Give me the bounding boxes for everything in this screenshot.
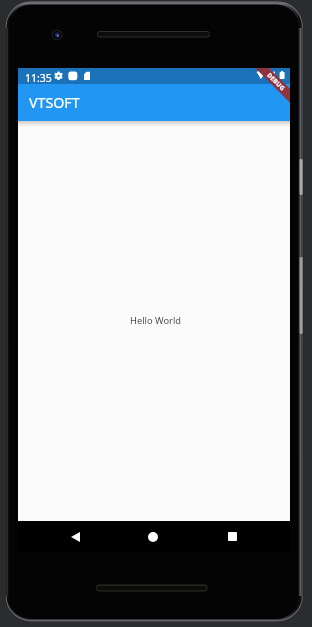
button[interactable]: Home [114,521,192,552]
staticText: 11:35 [25,71,52,85]
staticText: Hello World [130,314,182,327]
staticText: VTSOFT [29,93,80,112]
button[interactable]: Recent apps [193,521,271,552]
button[interactable]: Back [36,521,114,552]
